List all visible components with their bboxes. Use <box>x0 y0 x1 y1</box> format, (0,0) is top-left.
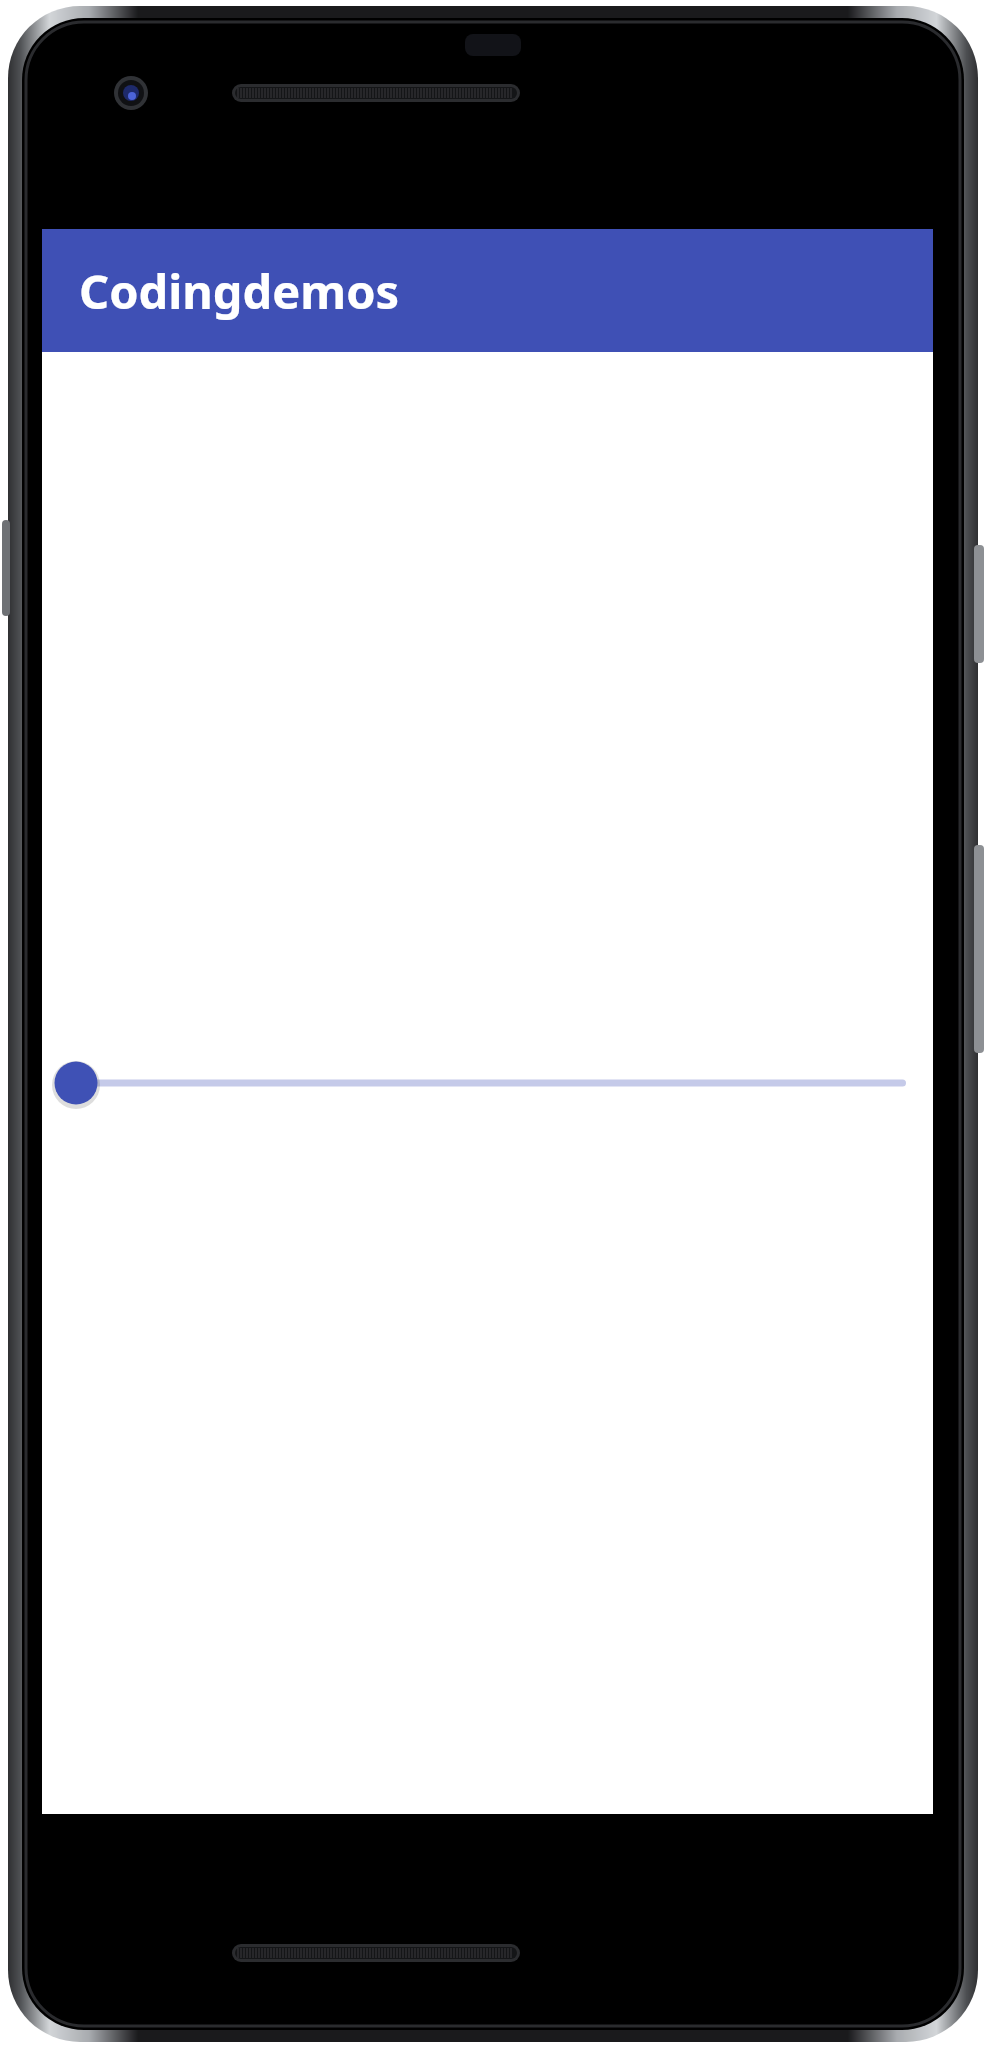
button[interactable]: Codingdemos <box>42 229 933 352</box>
button[interactable]: Slider <box>42 1061 933 1105</box>
staticText: Codingdemos <box>79 259 400 323</box>
